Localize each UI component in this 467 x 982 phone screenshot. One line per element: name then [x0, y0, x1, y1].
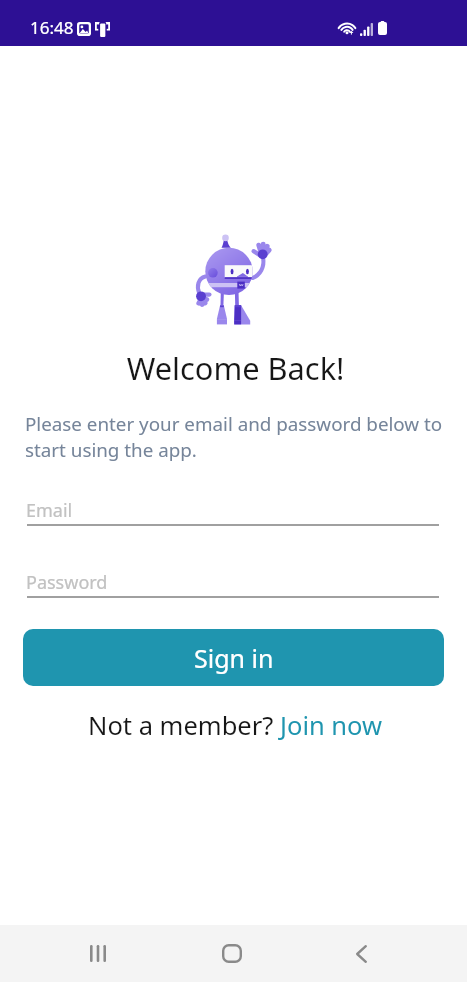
- staticText: Join now: [280, 708, 383, 743]
- staticText: Sign in: [194, 641, 274, 675]
- staticText: Email: [26, 498, 73, 523]
- button[interactable]: Back: [321, 925, 401, 982]
- staticText: Password: [26, 570, 108, 595]
- button[interactable]: Join now: [280, 708, 383, 743]
- button[interactable]: Recent apps: [58, 925, 138, 982]
- staticText: 16:48: [30, 16, 74, 39]
- staticText: Not a member?: [88, 708, 280, 743]
- button[interactable]: Sign in: [23, 629, 444, 686]
- staticText: Welcome Back!: [2, 347, 467, 389]
- button[interactable]: Password: [27, 564, 439, 598]
- staticText: Please enter your email and password bel…: [25, 411, 443, 463]
- button[interactable]: Email: [27, 492, 439, 526]
- button[interactable]: Home: [192, 925, 272, 982]
